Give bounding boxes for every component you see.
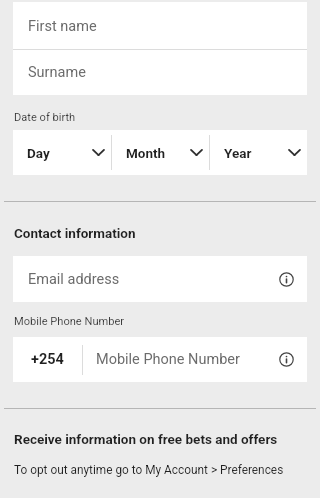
button[interactable]: Email address bbox=[13, 256, 307, 302]
button[interactable]: First name bbox=[13, 2, 307, 49]
staticText: To opt out anytime go to My Account > Pr… bbox=[14, 463, 284, 477]
button[interactable]: Day bbox=[13, 130, 111, 175]
staticText: +254 bbox=[31, 351, 64, 368]
staticText: Surname bbox=[28, 64, 86, 81]
button[interactable]: Phone number information bbox=[279, 352, 294, 367]
button[interactable]: Year bbox=[210, 130, 307, 175]
staticText: Receive information on free bets and off… bbox=[14, 431, 278, 447]
button[interactable]: +254 bbox=[13, 337, 82, 382]
staticText: Date of birth bbox=[14, 111, 76, 124]
button[interactable]: Month bbox=[112, 130, 209, 175]
button[interactable]: Surname bbox=[13, 50, 307, 95]
staticText: First name bbox=[28, 18, 97, 35]
staticText: Day bbox=[27, 145, 92, 161]
button[interactable]: Mobile Phone Number bbox=[83, 337, 307, 382]
staticText: Mobile Phone Number bbox=[14, 315, 125, 328]
staticText: Month bbox=[126, 145, 190, 161]
staticText: Year bbox=[224, 145, 288, 161]
staticText: Email address bbox=[28, 271, 279, 288]
staticText: Mobile Phone Number bbox=[96, 351, 279, 368]
staticText: Contact information bbox=[14, 225, 136, 241]
button[interactable]: Email address information bbox=[279, 272, 294, 287]
